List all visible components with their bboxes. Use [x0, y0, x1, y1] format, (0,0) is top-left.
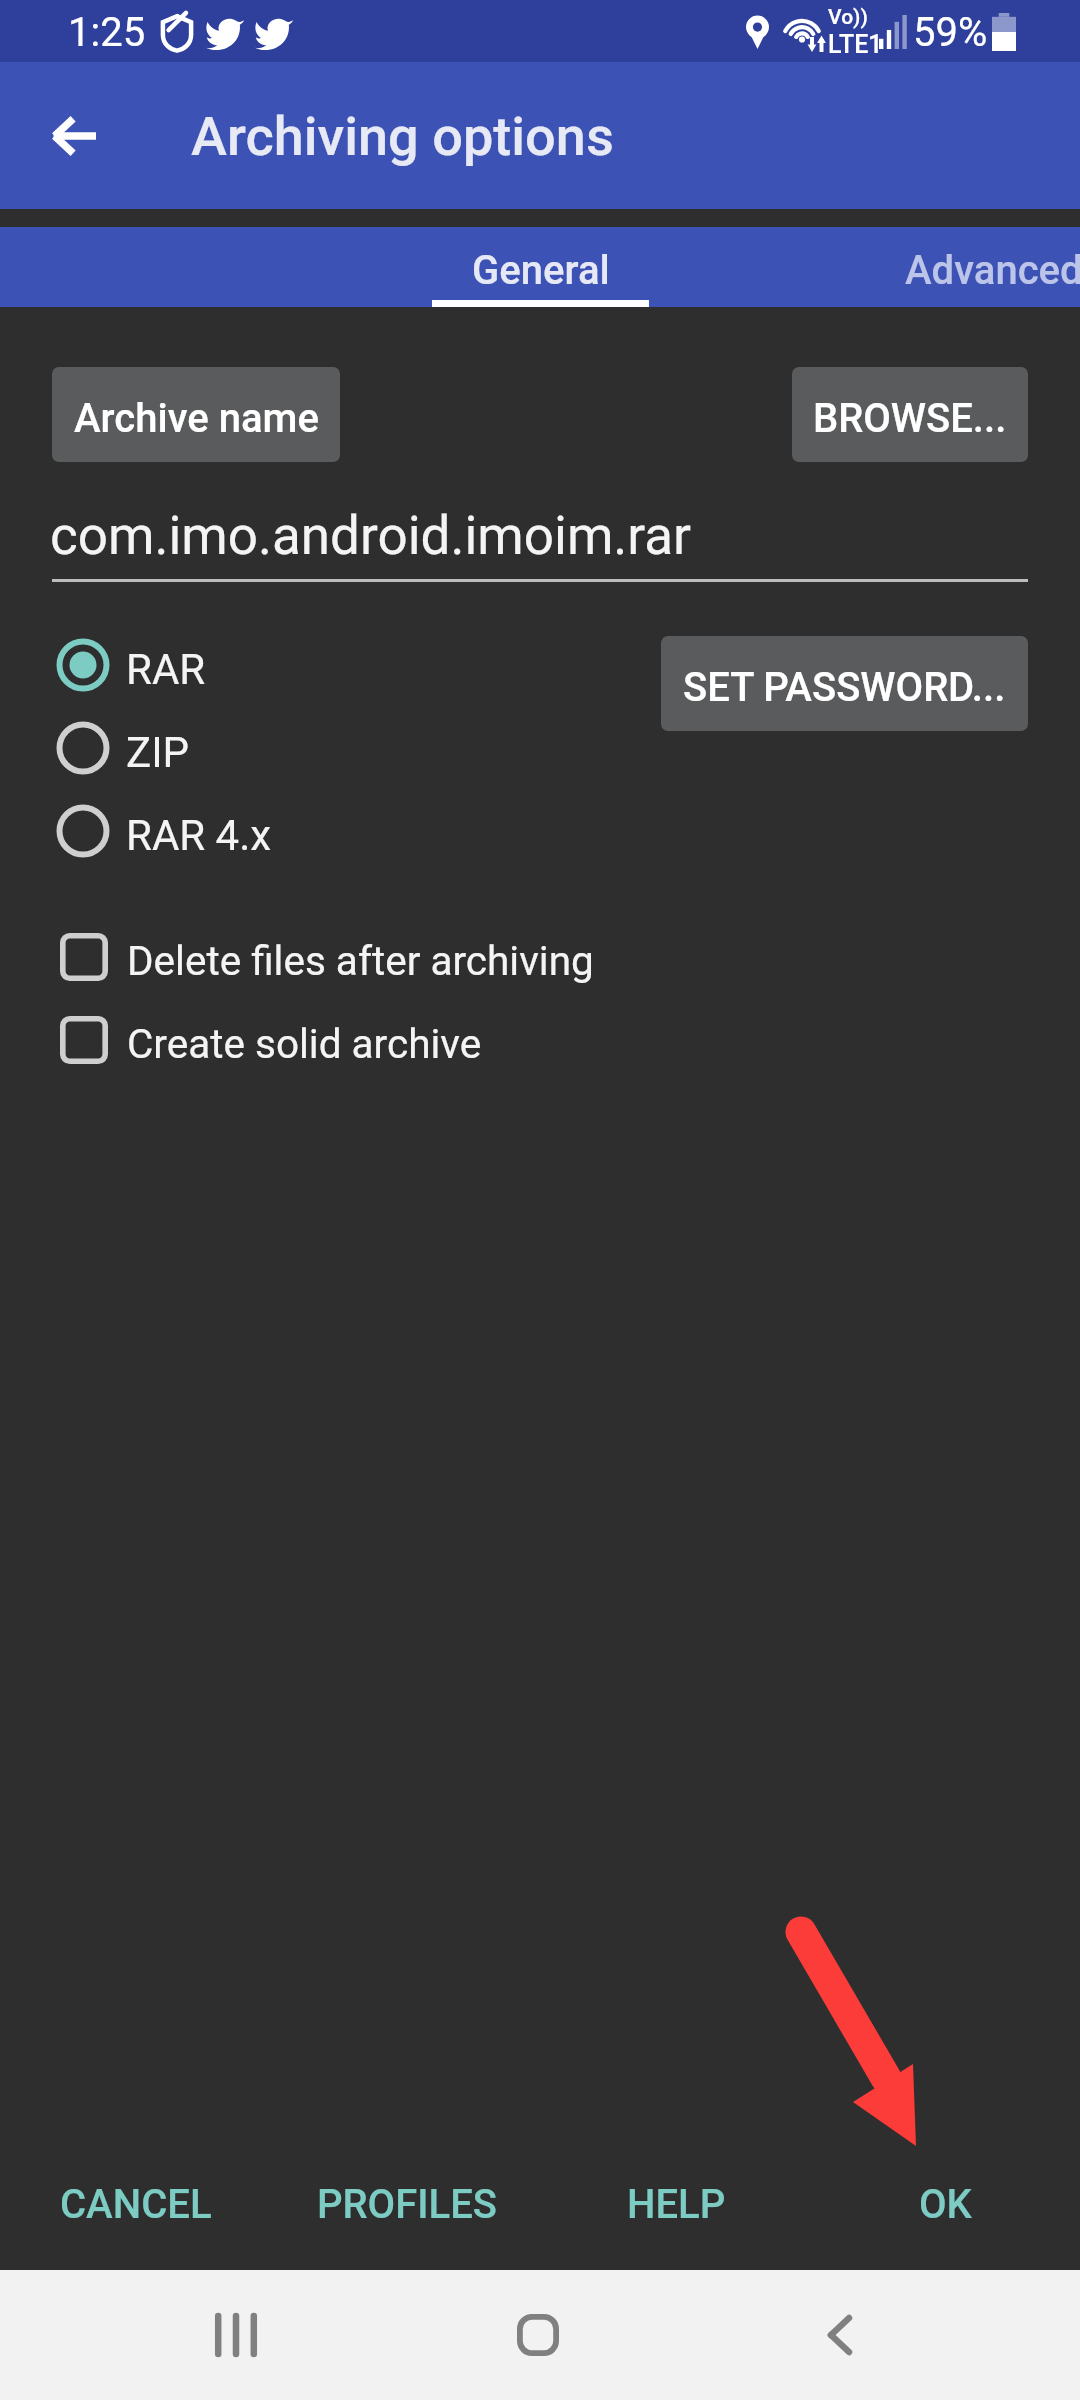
button[interactable]: SET PASSWORD...	[661, 636, 1028, 731]
button[interactable]: PROFILES	[307, 2144, 507, 2264]
button[interactable]: BROWSE...	[792, 367, 1028, 462]
staticText: OK	[919, 2181, 972, 2228]
button[interactable]: Advanced	[866, 227, 1080, 307]
button[interactable]: RAR 4.x	[56, 789, 510, 872]
staticText: CANCEL	[60, 2181, 212, 2228]
staticText: Advanced	[905, 247, 1080, 294]
staticText: ZIP	[126, 728, 190, 777]
button[interactable]: Delete files after archiving	[60, 915, 1080, 998]
staticText: RAR 4.x	[126, 811, 272, 860]
staticText: com.imo.android.imoim.rar	[50, 505, 692, 567]
button[interactable]: Back	[750, 2270, 930, 2400]
button[interactable]: Archive name	[52, 367, 340, 462]
staticText: BROWSE...	[813, 395, 1007, 442]
button[interactable]: Recent apps	[146, 2270, 326, 2400]
staticText: Archive name	[74, 395, 319, 442]
button[interactable]: ZIP	[56, 706, 510, 789]
staticText: Create solid archive	[127, 1020, 482, 1067]
staticText: RAR	[126, 645, 206, 694]
button[interactable]: HELP	[596, 2144, 756, 2264]
button[interactable]: Navigate up	[30, 92, 118, 180]
button[interactable]: Home	[448, 2270, 628, 2400]
staticText: 59%	[913, 9, 988, 56]
staticText: SET PASSWORD...	[683, 664, 1006, 711]
staticText: Delete files after archiving	[127, 937, 594, 984]
staticText: Vo))	[828, 5, 868, 30]
staticText: PROFILES	[317, 2181, 497, 2228]
button[interactable]: General	[432, 227, 649, 307]
staticText: HELP	[627, 2181, 726, 2228]
staticText: General	[472, 247, 610, 294]
staticText: LTE1	[828, 30, 883, 59]
button[interactable]: OK	[872, 2144, 1018, 2264]
button[interactable]: RAR	[56, 623, 510, 706]
staticText: Archiving options	[191, 105, 614, 168]
button[interactable]: Create solid archive	[60, 998, 1080, 1081]
button[interactable]: CANCEL	[46, 2144, 226, 2264]
staticText: 1:25	[68, 9, 146, 56]
